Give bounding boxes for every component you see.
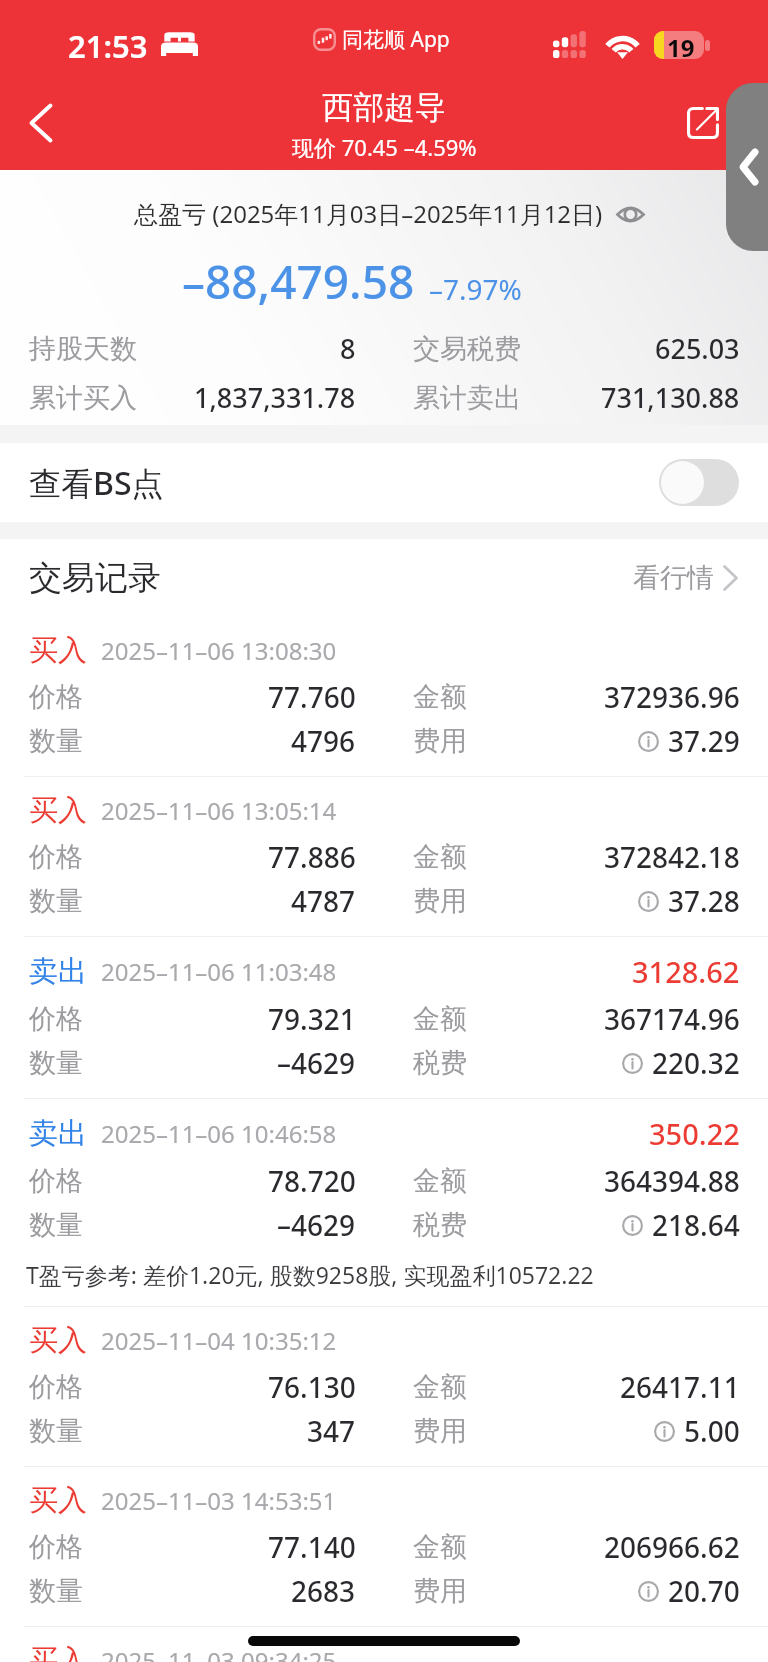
staticText: 数量 bbox=[29, 1414, 83, 1448]
button[interactable]: 卖出 bbox=[0, 937, 768, 1098]
staticText: 4796 bbox=[291, 722, 356, 760]
button[interactable]: Back bbox=[9, 91, 73, 155]
staticText: 价格 bbox=[29, 1370, 83, 1404]
button[interactable]: 买入 bbox=[0, 1627, 768, 1662]
staticText: 2025–11–03 09:34:25 bbox=[101, 1644, 337, 1662]
staticText: 价格 bbox=[29, 1530, 83, 1564]
staticText: 价格 bbox=[29, 1002, 83, 1036]
staticText: 累计买入 bbox=[29, 381, 137, 415]
staticText: 看行情 bbox=[633, 561, 714, 595]
staticText: 220.32 bbox=[652, 1044, 740, 1082]
button[interactable]: 买入 bbox=[0, 777, 768, 936]
staticText: 交易记录 bbox=[29, 557, 161, 599]
button[interactable]: 买入 bbox=[0, 617, 768, 776]
staticText: 价格 bbox=[29, 840, 83, 874]
staticText: 数量 bbox=[29, 1208, 83, 1242]
staticText: 金额 bbox=[413, 1002, 467, 1036]
staticText: 现价 70.45 –4.59% bbox=[292, 132, 477, 162]
staticText: 206966.62 bbox=[604, 1528, 740, 1566]
staticText: 76.130 bbox=[268, 1368, 356, 1406]
staticText: 买入 bbox=[29, 1322, 87, 1359]
staticText: 价格 bbox=[29, 1164, 83, 1198]
staticText: 税费 bbox=[413, 1046, 467, 1080]
staticText: 金额 bbox=[413, 1370, 467, 1404]
staticText: 总盈亏 (2025年11月03日–2025年11月12日) bbox=[134, 197, 603, 230]
staticText: 金额 bbox=[413, 1164, 467, 1198]
staticText: 79.321 bbox=[268, 1000, 356, 1038]
button[interactable]: 查看BS点 bbox=[0, 443, 768, 522]
staticText: 218.64 bbox=[652, 1206, 740, 1244]
staticText: 金额 bbox=[413, 840, 467, 874]
staticText: 数量 bbox=[29, 1046, 83, 1080]
staticText: 数量 bbox=[29, 1574, 83, 1608]
staticText: 347 bbox=[307, 1412, 356, 1450]
staticText: 77.886 bbox=[268, 838, 356, 876]
staticText: 19 bbox=[667, 31, 695, 59]
staticText: 21:53 bbox=[68, 25, 148, 67]
staticText: 20.70 bbox=[668, 1572, 740, 1610]
staticText: 372842.18 bbox=[604, 838, 740, 876]
staticText: 8 bbox=[340, 330, 356, 367]
staticText: 交易税费 bbox=[413, 332, 521, 366]
staticText: 77.140 bbox=[268, 1528, 356, 1566]
button[interactable]: Toggle amount visibility bbox=[614, 198, 646, 230]
button[interactable]: 看行情 bbox=[629, 557, 742, 599]
staticText: 买入 bbox=[29, 632, 87, 669]
staticText: 26417.11 bbox=[620, 1368, 740, 1406]
button[interactable]: Open side panel bbox=[726, 83, 768, 251]
staticText: 价格 bbox=[29, 680, 83, 714]
staticText: 2025–11–06 13:05:14 bbox=[101, 794, 337, 827]
staticText: 买入 bbox=[29, 1642, 87, 1662]
staticText: 费用 bbox=[413, 884, 467, 918]
button[interactable]: 买入 bbox=[0, 1307, 768, 1466]
staticText: 卖出 bbox=[29, 953, 87, 990]
staticText: 364394.88 bbox=[604, 1162, 740, 1200]
button[interactable]: 卖出 bbox=[0, 1099, 768, 1306]
staticText: 2683 bbox=[291, 1572, 356, 1610]
staticText: 买入 bbox=[29, 792, 87, 829]
staticText: 731,130.88 bbox=[601, 379, 740, 416]
staticText: 数量 bbox=[29, 884, 83, 918]
staticText: 2025–11–06 13:08:30 bbox=[101, 634, 337, 667]
staticText: 同花顺 App bbox=[342, 25, 450, 54]
staticText: 2025–11–03 14:53:51 bbox=[101, 1484, 337, 1517]
staticText: 1,837,331.78 bbox=[194, 379, 356, 416]
staticText: 税费 bbox=[413, 1208, 467, 1242]
staticText: 卖出 bbox=[29, 1115, 87, 1152]
staticText: 78.720 bbox=[268, 1162, 356, 1200]
staticText: 3128.62 bbox=[632, 952, 740, 991]
staticText: 37.29 bbox=[668, 722, 740, 760]
staticText: 372936.96 bbox=[604, 678, 740, 716]
staticText: 买入 bbox=[29, 1482, 87, 1519]
staticText: –88,479.58 bbox=[182, 250, 415, 313]
staticText: –7.97% bbox=[429, 270, 522, 308]
staticText: 数量 bbox=[29, 724, 83, 758]
staticText: 费用 bbox=[413, 724, 467, 758]
staticText: 费用 bbox=[413, 1574, 467, 1608]
staticText: 金额 bbox=[413, 1530, 467, 1564]
staticText: 37.28 bbox=[668, 882, 740, 920]
button[interactable]: Share bbox=[671, 91, 735, 155]
staticText: 累计卖出 bbox=[413, 381, 521, 415]
staticText: 2025–11–06 10:46:58 bbox=[101, 1117, 337, 1150]
staticText: 2025–11–06 11:03:48 bbox=[101, 955, 337, 988]
staticText: 金额 bbox=[413, 680, 467, 714]
staticText: 2025–11–04 10:35:12 bbox=[101, 1324, 337, 1357]
staticText: 625.03 bbox=[655, 330, 740, 367]
staticText: 西部超导 bbox=[322, 88, 446, 127]
staticText: 367174.96 bbox=[604, 1000, 740, 1038]
staticText: 查看BS点 bbox=[29, 461, 164, 505]
staticText: 费用 bbox=[413, 1414, 467, 1448]
staticText: 持股天数 bbox=[29, 332, 137, 366]
staticText: T盈亏参考: 差价1.20元, 股数9258股, 实现盈利10572.22 bbox=[26, 1259, 594, 1290]
staticText: –4629 bbox=[277, 1044, 356, 1082]
staticText: 5.00 bbox=[684, 1412, 740, 1450]
staticText: 77.760 bbox=[268, 678, 356, 716]
staticText: 350.22 bbox=[649, 1114, 740, 1153]
button[interactable]: 买入 bbox=[0, 1467, 768, 1626]
staticText: –4629 bbox=[277, 1206, 356, 1244]
staticText: 4787 bbox=[291, 882, 356, 920]
